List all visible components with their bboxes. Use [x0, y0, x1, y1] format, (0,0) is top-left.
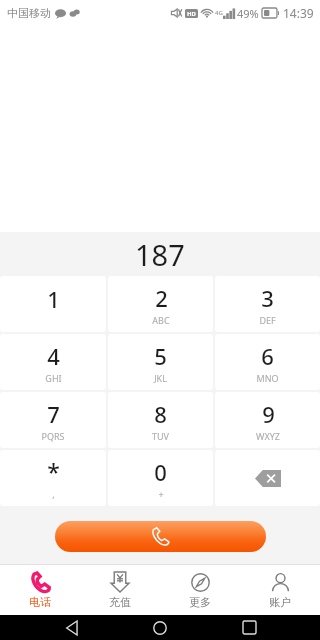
- staticText: 49%: [237, 6, 259, 21]
- button[interactable]: 3: [215, 276, 320, 332]
- button[interactable]: 6: [215, 334, 320, 390]
- staticText: 充值: [109, 595, 131, 609]
- button[interactable]: Recents: [232, 615, 266, 640]
- button[interactable]: 8: [108, 392, 213, 448]
- staticText: HD: [187, 10, 196, 18]
- staticText: DEF: [259, 314, 276, 326]
- staticText: 中国移动: [7, 6, 51, 20]
- staticText: 3: [261, 283, 274, 313]
- button[interactable]: 电话: [0, 565, 80, 615]
- button[interactable]: Home: [143, 615, 177, 640]
- button[interactable]: Back: [55, 615, 89, 640]
- staticText: 6: [261, 341, 274, 371]
- button[interactable]: 1: [0, 276, 106, 332]
- staticText: 1: [47, 284, 60, 314]
- staticText: 8: [154, 399, 167, 429]
- staticText: *: [47, 456, 60, 487]
- button[interactable]: 7: [0, 392, 106, 448]
- staticText: WXYZ: [256, 430, 280, 442]
- button[interactable]: 9: [215, 392, 320, 448]
- button[interactable]: 充值: [80, 565, 160, 615]
- staticText: PQRS: [41, 430, 65, 442]
- staticText: TUV: [152, 430, 169, 442]
- staticText: ,: [52, 488, 55, 500]
- staticText: 187: [135, 235, 185, 274]
- button[interactable]: 4: [0, 334, 106, 390]
- staticText: 电话: [29, 595, 51, 609]
- staticText: GHI: [45, 372, 62, 384]
- staticText: ABC: [152, 314, 170, 326]
- button[interactable]: 2: [108, 276, 213, 332]
- staticText: 5: [154, 341, 167, 371]
- button[interactable]: 更多: [160, 565, 240, 615]
- staticText: 4: [47, 341, 60, 371]
- button[interactable]: 账户: [240, 565, 320, 615]
- button[interactable]: *: [0, 450, 106, 506]
- button[interactable]: 0: [108, 450, 213, 506]
- staticText: MNO: [256, 372, 279, 384]
- staticText: JKL: [154, 372, 167, 384]
- staticText: 2: [155, 283, 168, 313]
- button[interactable]: Delete: [215, 450, 320, 506]
- staticText: 0: [154, 457, 167, 487]
- staticText: 14:39: [283, 5, 314, 21]
- button[interactable]: Call: [55, 521, 266, 552]
- staticText: 4G: [215, 9, 223, 17]
- staticText: 账户: [269, 595, 291, 609]
- staticText: 更多: [189, 595, 211, 609]
- staticText: 9: [262, 399, 275, 429]
- staticText: +: [158, 488, 164, 500]
- staticText: 7: [47, 399, 60, 429]
- button[interactable]: 5: [108, 334, 213, 390]
